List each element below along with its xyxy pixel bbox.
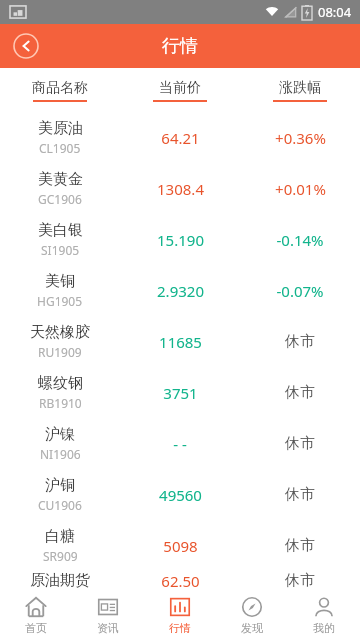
button[interactable]: 美铜: [0, 265, 360, 316]
staticText: RB1910: [39, 395, 82, 411]
staticText: 休市: [285, 434, 315, 453]
staticText: 2.9320: [157, 281, 204, 301]
staticText: 62.50: [161, 571, 200, 590]
staticText: 白糖: [45, 527, 75, 546]
button[interactable]: 沪铜: [0, 469, 360, 520]
staticText: 3751: [163, 383, 198, 403]
staticText: 1308.4: [157, 179, 204, 199]
staticText: 08:04: [318, 3, 352, 21]
staticText: -0.07%: [276, 281, 324, 301]
staticText: 螺纹钢: [38, 374, 83, 393]
staticText: 美铜: [45, 272, 75, 291]
staticText: 11685: [159, 332, 202, 352]
staticText: 休市: [285, 485, 315, 504]
staticText: 商品名称: [32, 79, 88, 97]
staticText: RU1909: [38, 344, 82, 360]
button[interactable]: 行情: [144, 590, 216, 640]
staticText: 行情: [162, 35, 198, 58]
staticText: 休市: [285, 536, 315, 555]
staticText: GC1906: [38, 191, 82, 207]
staticText: 首页: [25, 621, 47, 635]
button[interactable]: 商品名称: [0, 68, 120, 112]
staticText: 49560: [159, 485, 202, 505]
staticText: 沪铜: [45, 476, 75, 495]
button[interactable]: 资讯: [72, 590, 144, 640]
staticText: 发现: [241, 621, 263, 635]
staticText: 15.190: [157, 230, 204, 250]
staticText: 64.21: [161, 128, 200, 148]
button[interactable]: 美黄金: [0, 163, 360, 214]
staticText: 休市: [285, 383, 315, 402]
staticText: - -: [173, 434, 187, 454]
button[interactable]: 我的: [288, 590, 360, 640]
staticText: HG1905: [37, 293, 83, 309]
staticText: NI1906: [40, 446, 81, 462]
button[interactable]: 美白银: [0, 214, 360, 265]
button[interactable]: 发现: [216, 590, 288, 640]
button[interactable]: 首页: [0, 590, 72, 640]
staticText: +0.01%: [275, 179, 326, 199]
staticText: -0.14%: [276, 230, 324, 250]
staticText: 5098: [163, 536, 198, 556]
staticText: 当前价: [159, 79, 201, 97]
button[interactable]: 当前价: [120, 68, 240, 112]
staticText: 资讯: [97, 621, 119, 635]
button[interactable]: 螺纹钢: [0, 367, 360, 418]
staticText: SI1905: [41, 242, 80, 258]
staticText: CL1905: [39, 140, 81, 156]
button[interactable]: 白糖: [0, 520, 360, 571]
staticText: 行情: [169, 621, 191, 635]
button[interactable]: Back: [8, 28, 44, 64]
staticText: 沪镍: [45, 425, 75, 444]
staticText: 休市: [285, 571, 315, 590]
staticText: SR909: [43, 548, 78, 564]
staticText: 休市: [285, 332, 315, 351]
button[interactable]: 涨跌幅: [240, 68, 360, 112]
staticText: 美黄金: [38, 170, 83, 189]
staticText: 天然橡胶: [30, 323, 90, 342]
staticText: 美白银: [38, 221, 83, 240]
button[interactable]: 美原油: [0, 112, 360, 163]
staticText: 我的: [313, 621, 335, 635]
staticText: 美原油: [38, 119, 83, 138]
button[interactable]: 天然橡胶: [0, 316, 360, 367]
staticText: +0.36%: [275, 128, 326, 148]
staticText: CU1906: [38, 497, 82, 513]
button[interactable]: 原油期货: [0, 571, 360, 590]
staticText: 原油期货: [30, 571, 90, 590]
staticText: 涨跌幅: [279, 79, 321, 97]
button[interactable]: 沪镍: [0, 418, 360, 469]
